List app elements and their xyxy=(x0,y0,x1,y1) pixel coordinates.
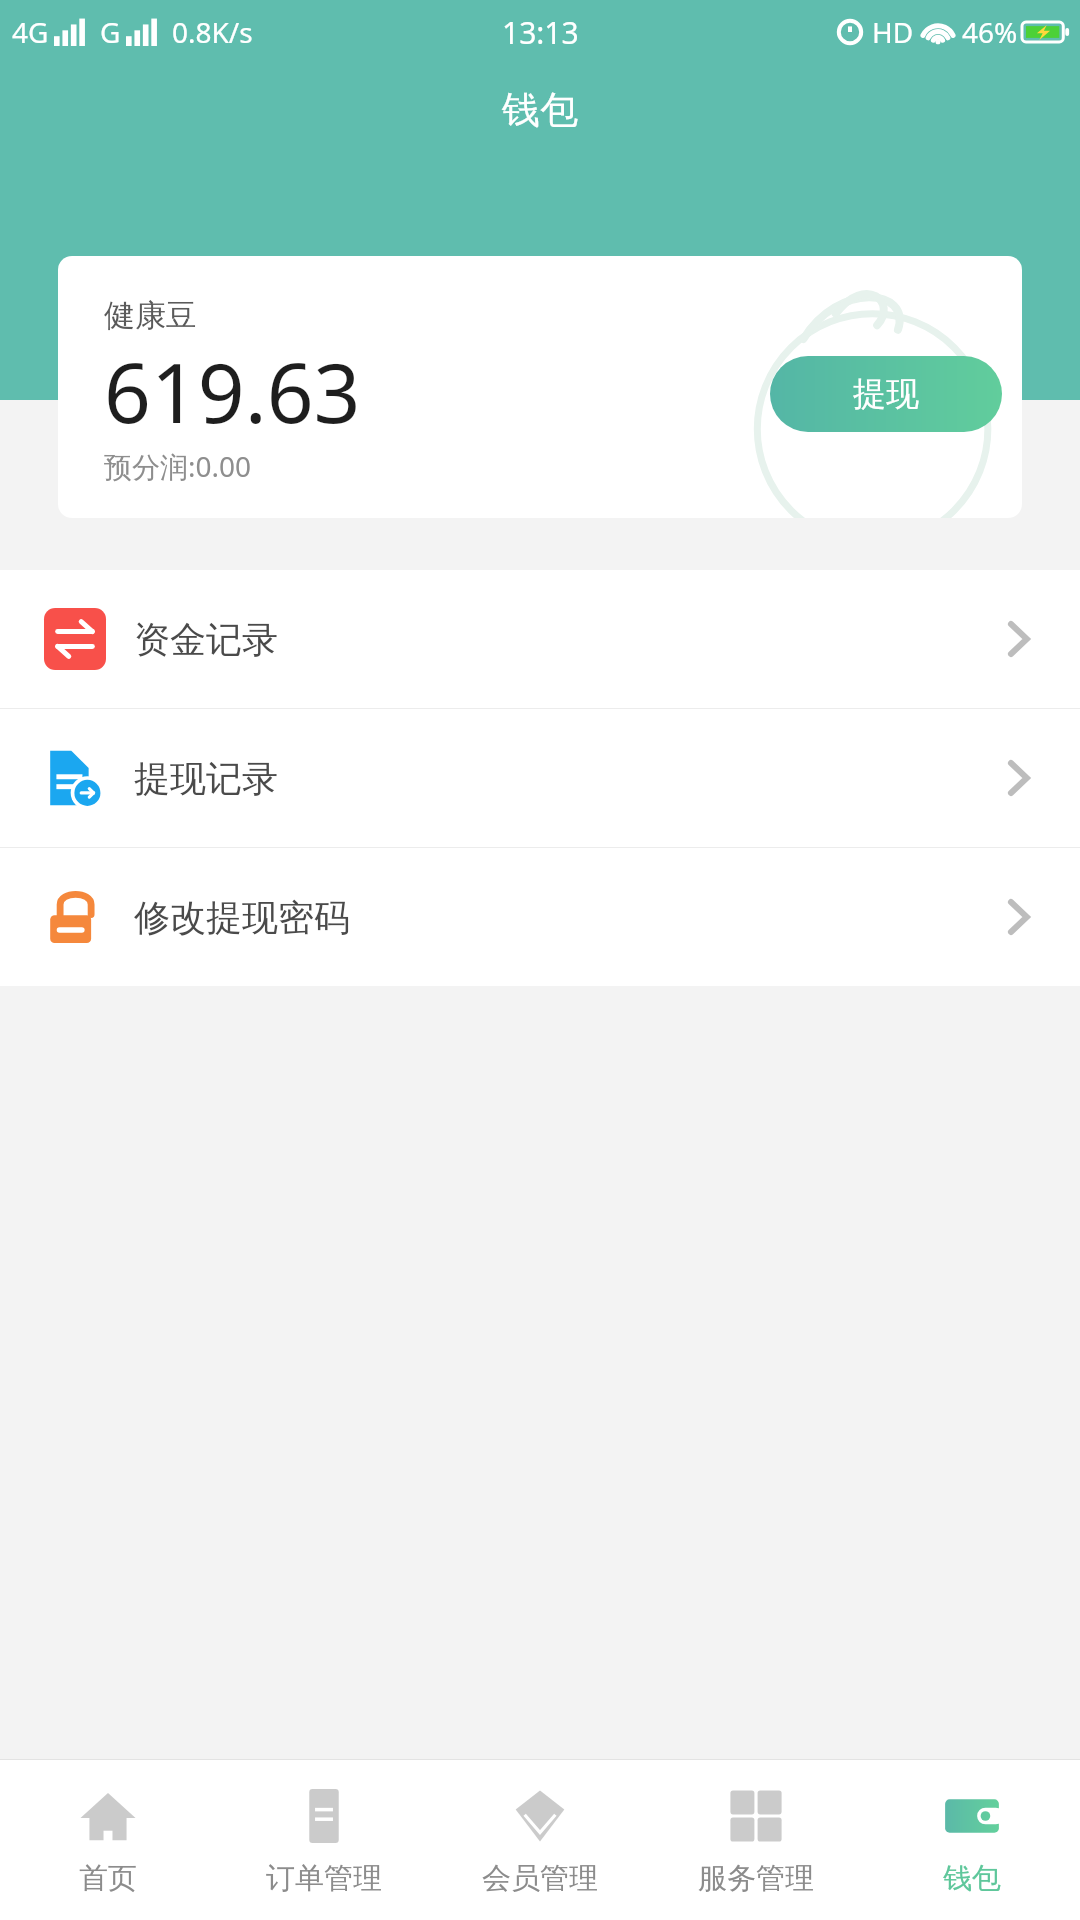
button[interactable]: 钱包 xyxy=(864,1760,1080,1920)
staticText: 订单管理 xyxy=(266,1860,382,1897)
staticText: 资金记录 xyxy=(134,617,278,662)
staticText: 0.8K/s xyxy=(172,13,253,51)
button[interactable]: 服务管理 xyxy=(648,1760,864,1920)
button[interactable]: 修改提现密码 xyxy=(0,848,1080,986)
staticText: 619.63 xyxy=(104,335,361,447)
staticText: 会员管理 xyxy=(482,1860,598,1897)
button[interactable]: 订单管理 xyxy=(216,1760,432,1920)
staticText: 健康豆 xyxy=(104,296,197,335)
button[interactable]: 会员管理 xyxy=(432,1760,648,1920)
staticText: 预分润:0.00 xyxy=(104,447,252,485)
staticText: 提现记录 xyxy=(134,756,278,801)
button[interactable]: 首页 xyxy=(0,1760,216,1920)
button[interactable]: 资金记录 xyxy=(0,570,1080,708)
button[interactable]: 提现 xyxy=(770,356,1002,432)
staticText: 钱包 xyxy=(943,1860,1001,1897)
staticText: 首页 xyxy=(79,1860,137,1897)
staticText: 钱包 xyxy=(502,86,578,134)
button[interactable]: 提现记录 xyxy=(0,709,1080,847)
staticText: HD xyxy=(872,13,914,51)
staticText: 修改提现密码 xyxy=(134,895,350,940)
staticText: 提现 xyxy=(853,373,919,415)
staticText: 13:13 xyxy=(502,12,579,53)
staticText: G xyxy=(100,13,121,51)
staticText: 46% xyxy=(962,13,1018,51)
staticText: 服务管理 xyxy=(698,1860,814,1897)
staticText: 4G xyxy=(12,13,49,51)
